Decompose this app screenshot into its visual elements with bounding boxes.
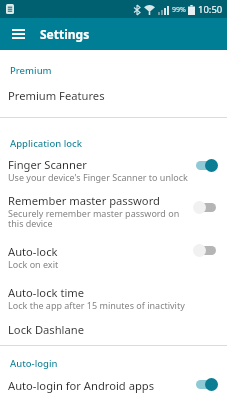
button[interactable] xyxy=(193,243,218,257)
staticText: Premium Features xyxy=(8,88,105,103)
staticText: Settings xyxy=(40,26,90,42)
staticText: 99% xyxy=(172,5,186,15)
staticText: Auto-login for Android apps xyxy=(8,378,155,393)
staticText: Lock on exit xyxy=(8,258,59,270)
button[interactable]: Lock Dashlane xyxy=(0,316,227,340)
button[interactable]: Premium Features xyxy=(0,80,227,114)
button[interactable]: Remember master password xyxy=(0,190,227,230)
staticText: Lock the app after 15 minutes of inactiv… xyxy=(8,299,185,311)
button[interactable]: Auto-lock xyxy=(0,241,227,271)
staticText: Use your device's Finger Scanner to unlo… xyxy=(8,171,188,183)
staticText: Lock Dashlane xyxy=(8,322,84,337)
staticText: Securely remember master password on thi… xyxy=(8,207,180,230)
staticText: Application lock xyxy=(10,137,83,150)
button[interactable]: Auto-login for Android apps xyxy=(0,372,227,400)
button[interactable] xyxy=(193,158,218,172)
button[interactable] xyxy=(193,200,218,214)
staticText: Remember master password xyxy=(8,193,160,208)
staticText: Auto-lock time xyxy=(8,285,85,300)
staticText: Premium xyxy=(10,64,52,77)
button[interactable] xyxy=(193,377,218,391)
button[interactable] xyxy=(7,23,29,45)
staticText: 10:50 xyxy=(198,3,223,16)
staticText: Auto-login xyxy=(10,357,58,370)
button[interactable]: Auto-lock time xyxy=(0,282,227,312)
button[interactable]: Finger Scanner xyxy=(0,154,227,186)
staticText: Auto-lock xyxy=(8,244,58,259)
staticText: Finger Scanner xyxy=(8,157,87,172)
